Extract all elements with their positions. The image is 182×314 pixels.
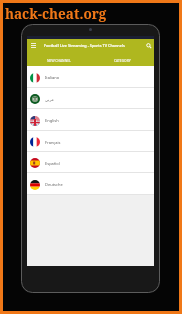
staticText: عربي: [45, 97, 55, 102]
staticText: English: [45, 118, 59, 123]
staticText: NEW CHANNEL: [47, 58, 71, 62]
button[interactable]: Menu: [27, 39, 40, 52]
button[interactable]: Deutsche: [27, 173, 154, 194]
button[interactable]: عربي: [27, 88, 154, 108]
button[interactable]: Español: [27, 152, 154, 172]
button[interactable]: Search: [143, 39, 154, 52]
button[interactable]: Français: [27, 131, 154, 151]
staticText: Español: [45, 161, 60, 166]
staticText: Français: [45, 140, 61, 145]
staticText: Italiano: [45, 75, 60, 80]
staticText: Football Live Streaming - Sports TV Chan…: [44, 43, 143, 48]
button[interactable]: Italiano: [27, 66, 154, 87]
button[interactable]: CATEGORY: [90, 52, 154, 66]
button[interactable]: NEW CHANNEL: [27, 52, 90, 66]
staticText: hack-cheat.org: [5, 5, 107, 23]
staticText: CATEGORY: [114, 58, 131, 62]
staticText: Deutsche: [45, 182, 63, 187]
button[interactable]: English: [27, 109, 154, 130]
